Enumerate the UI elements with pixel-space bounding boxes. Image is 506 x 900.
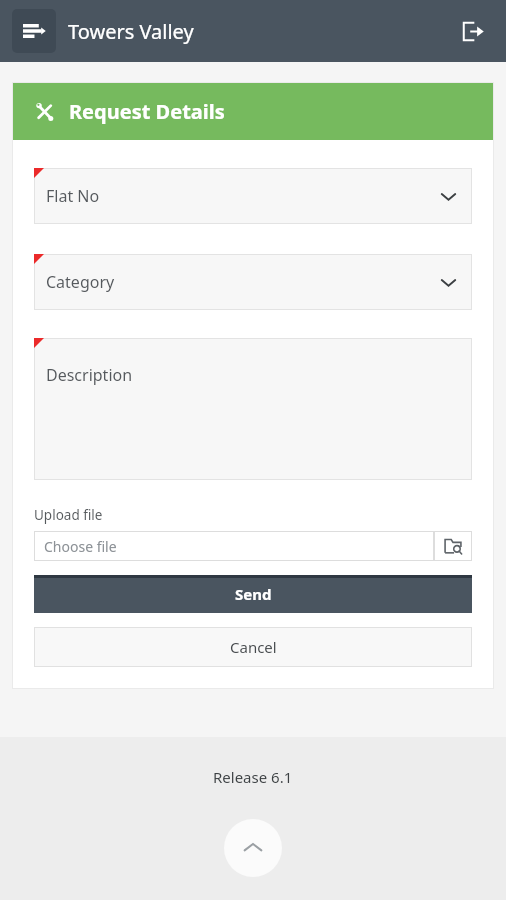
button[interactable]: Category — [34, 254, 472, 310]
button[interactable]: Open navigation menu — [12, 9, 56, 53]
staticText: Send — [235, 584, 272, 604]
staticText: Request Details — [69, 98, 225, 125]
button[interactable]: Log out — [450, 9, 494, 53]
staticText: Description — [46, 364, 133, 386]
staticText: Category — [46, 271, 115, 293]
button[interactable]: Description — [34, 338, 472, 480]
staticText: Cancel — [230, 637, 277, 657]
button[interactable]: Send — [34, 575, 472, 613]
staticText: Towers Valley — [68, 18, 194, 45]
staticText: Upload file — [34, 506, 103, 524]
staticText: Choose file — [44, 537, 117, 556]
button[interactable]: Flat No — [34, 168, 472, 224]
button[interactable]: Cancel — [34, 627, 472, 667]
button[interactable]: Browse for file — [434, 531, 472, 561]
button[interactable]: Choose file — [34, 531, 434, 561]
staticText: Release 6.1 — [213, 767, 293, 787]
button[interactable]: Scroll to top — [224, 819, 282, 877]
staticText: Flat No — [46, 185, 100, 207]
